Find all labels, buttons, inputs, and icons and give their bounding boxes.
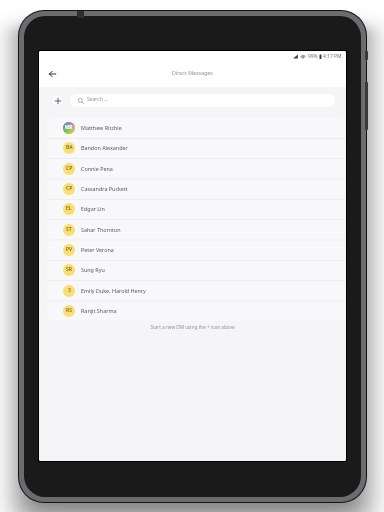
staticText: Search ... [87, 96, 109, 103]
staticText: 99% [308, 53, 318, 60]
staticText: 3 [68, 287, 71, 294]
staticText: Edgar Lin [81, 205, 105, 212]
staticText: PV [66, 246, 73, 253]
staticText: Sung Ryu [81, 266, 105, 273]
staticText: SR [66, 266, 73, 273]
button[interactable]: 3 [47, 281, 345, 301]
button[interactable]: Search ... [70, 94, 335, 107]
button[interactable]: MR [47, 118, 345, 138]
staticText: Start a new DM using the + icon above [39, 324, 346, 330]
button[interactable]: New message [51, 94, 64, 107]
button[interactable]: Back [44, 66, 60, 82]
button[interactable]: CP [47, 159, 345, 179]
staticText: Cassandra Puckett [81, 185, 128, 192]
button[interactable]: PV [47, 240, 345, 260]
staticText: Emily Duke, Harold Henry [81, 287, 146, 294]
staticText: RS [66, 307, 73, 314]
staticText: Ranjit Sharma [81, 307, 117, 314]
staticText: Sahar Thornton [81, 226, 121, 233]
staticText: Peter Verona [81, 246, 114, 253]
staticText: CP [66, 165, 73, 172]
staticText: BA [66, 144, 73, 151]
staticText: 4:17 PM [323, 53, 342, 60]
button[interactable]: BA [47, 138, 345, 158]
button[interactable]: SR [47, 260, 345, 280]
staticText: Matthew Ritchie [81, 124, 122, 131]
staticText: Connie Pena [81, 165, 113, 172]
staticText: Bandon Alexander [81, 144, 128, 151]
button[interactable]: ST [47, 220, 345, 240]
button[interactable]: EL [47, 199, 345, 219]
staticText: Direct Messages [172, 69, 213, 76]
button[interactable]: CP [47, 179, 345, 199]
staticText: MR [65, 124, 73, 130]
staticText: ST [66, 226, 72, 233]
staticText: CP [66, 185, 73, 192]
button[interactable]: RS [47, 301, 345, 321]
staticText: EL [66, 205, 72, 212]
